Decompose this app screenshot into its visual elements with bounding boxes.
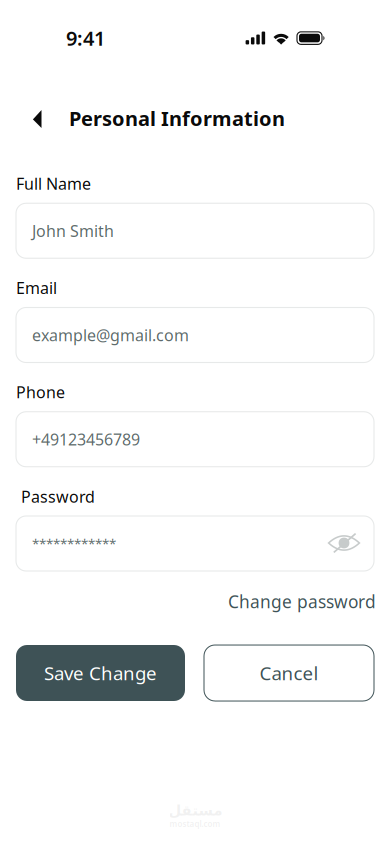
button[interactable]: John Smith <box>16 203 374 258</box>
button[interactable]: Change password <box>226 586 374 617</box>
staticText: Personal Information <box>69 105 285 132</box>
staticText: Phone <box>16 381 65 403</box>
staticText: +49123456789 <box>32 429 140 450</box>
staticText: مستقل <box>168 802 222 819</box>
staticText: Full Name <box>16 173 91 194</box>
button[interactable]: example@gmail.com <box>16 307 374 362</box>
staticText: Change password <box>228 590 376 613</box>
button[interactable]: ************ <box>16 516 374 571</box>
button[interactable]: Save Change <box>16 645 185 701</box>
staticText: Password <box>21 486 95 507</box>
staticText: 9:41 <box>66 25 105 51</box>
staticText: Save Change <box>44 661 157 685</box>
staticText: mostaql.com <box>169 819 220 829</box>
staticText: ************ <box>32 535 116 552</box>
staticText: Email <box>16 277 57 298</box>
button[interactable]: Cancel <box>204 645 374 701</box>
staticText: John Smith <box>32 220 114 241</box>
staticText: example@gmail.com <box>32 324 189 346</box>
button[interactable]: Back <box>18 101 56 137</box>
button[interactable]: +49123456789 <box>16 412 374 467</box>
button[interactable]: Show password <box>322 521 366 565</box>
staticText: Cancel <box>259 661 318 685</box>
